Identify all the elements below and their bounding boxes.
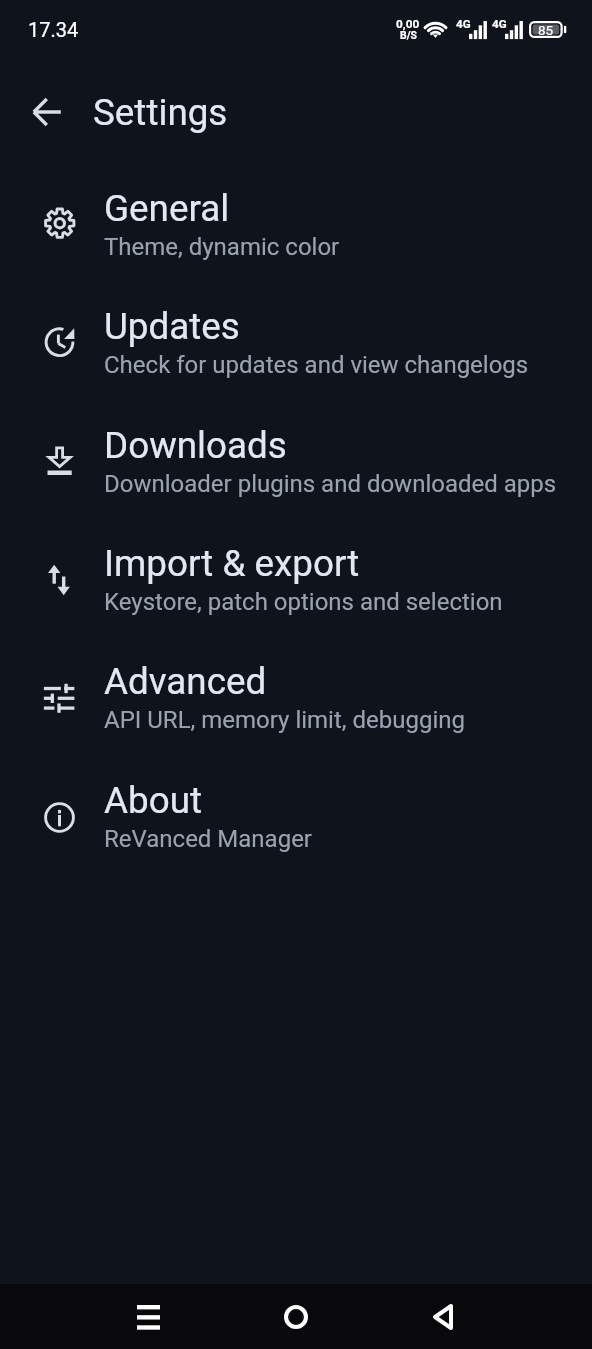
- button[interactable]: Downloads: [0, 403, 592, 521]
- staticText: Check for updates and view changelogs: [104, 351, 529, 379]
- staticText: General: [104, 187, 230, 230]
- staticText: Keystore, patch options and selection: [104, 588, 503, 616]
- button[interactable]: General: [0, 166, 592, 284]
- staticText: 17.34: [28, 18, 79, 41]
- staticText: B/S: [400, 29, 417, 41]
- staticText: Import & export: [104, 542, 360, 585]
- staticText: Settings: [93, 91, 228, 134]
- staticText: Advanced: [104, 660, 267, 703]
- button[interactable]: Import & export: [0, 521, 592, 639]
- staticText: About: [104, 779, 202, 822]
- staticText: Downloads: [104, 424, 287, 467]
- button[interactable]: Recent apps: [116, 1285, 180, 1349]
- staticText: ReVanced Manager: [104, 825, 312, 853]
- button[interactable]: Back: [15, 80, 79, 144]
- staticText: 85: [538, 22, 554, 38]
- button[interactable]: Home: [264, 1285, 328, 1349]
- staticText: Downloader plugins and downloaded apps: [104, 470, 557, 498]
- staticText: Updates: [104, 305, 240, 348]
- button[interactable]: About: [0, 758, 592, 876]
- button[interactable]: Back: [411, 1285, 475, 1349]
- staticText: 4G: [456, 17, 471, 31]
- staticText: 0,00: [396, 17, 420, 31]
- staticText: Theme, dynamic color: [104, 233, 340, 261]
- staticText: 4G: [492, 17, 507, 31]
- button[interactable]: Advanced: [0, 639, 592, 757]
- button[interactable]: Updates: [0, 284, 592, 402]
- staticText: API URL, memory limit, debugging: [104, 706, 465, 734]
